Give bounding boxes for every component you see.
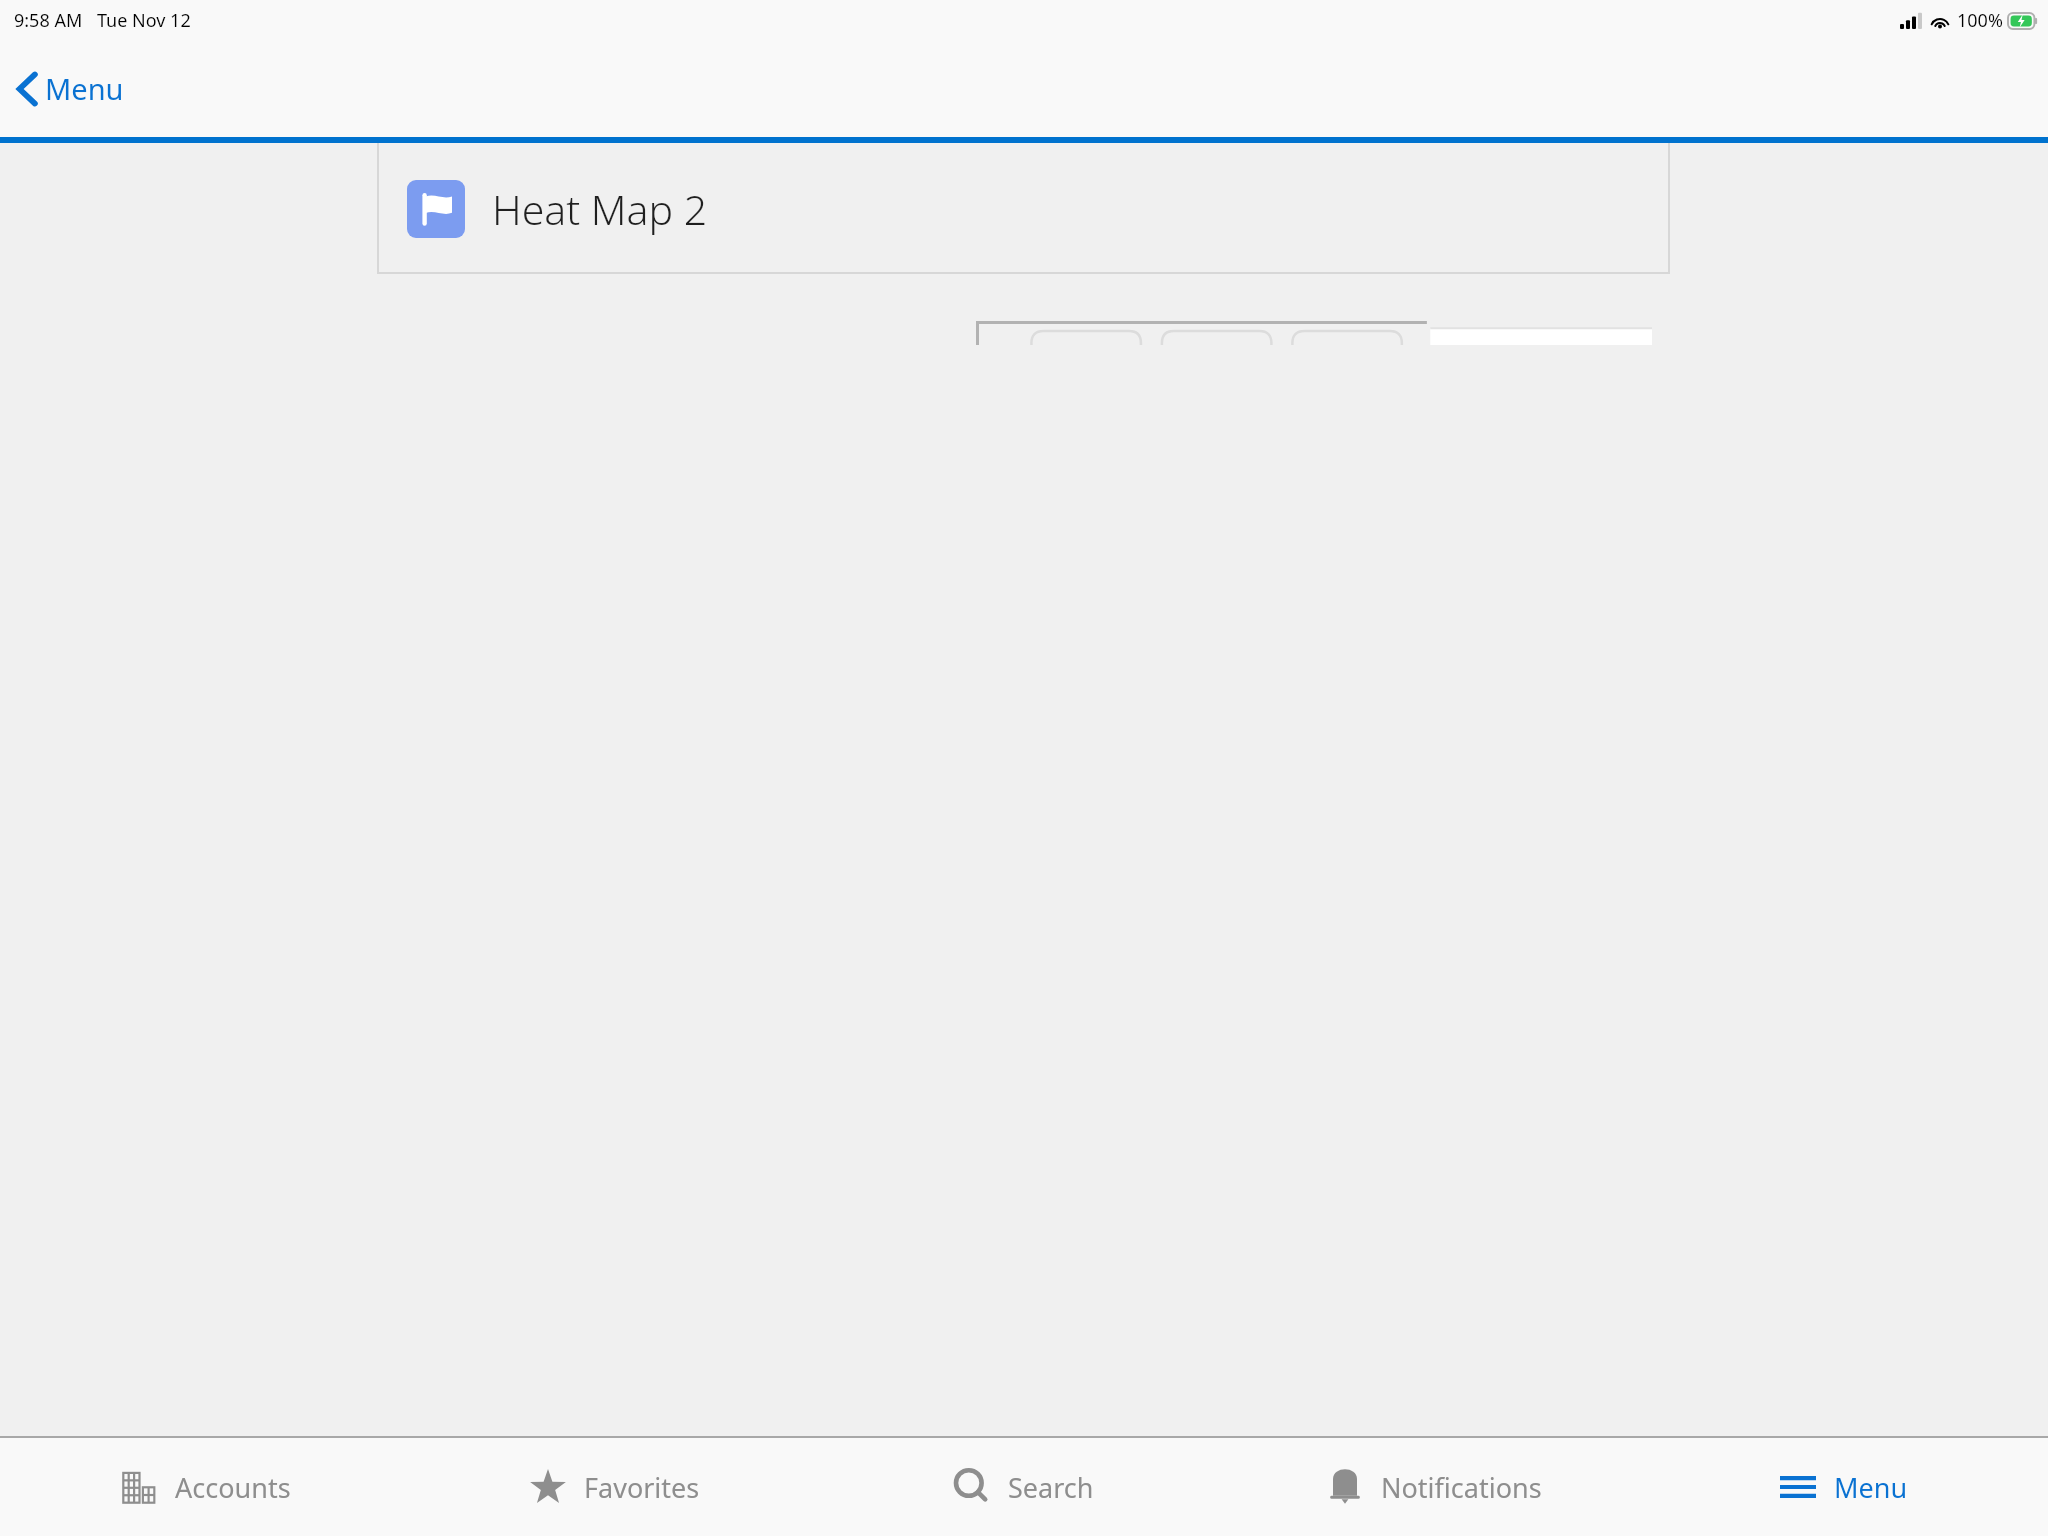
button[interactable]: Heat Map 2	[377, 143, 1670, 274]
staticText: Favorites	[584, 1469, 700, 1506]
staticText: 9:58 AM	[14, 8, 83, 33]
staticText: Menu	[1834, 1469, 1908, 1506]
staticText: 100%	[1957, 8, 2003, 33]
button[interactable]: Search	[818, 1438, 1228, 1536]
staticText: Accounts	[175, 1469, 291, 1506]
button[interactable]: Favorites	[409, 1438, 818, 1536]
staticText: Notifications	[1381, 1469, 1542, 1506]
staticText: Tue Nov 12	[97, 8, 191, 33]
staticText: Menu	[45, 69, 124, 108]
button[interactable]: Menu	[8, 63, 132, 114]
button[interactable]: Accounts	[0, 1438, 409, 1536]
staticText: Heat Map 2	[492, 181, 708, 237]
button[interactable]: Menu	[1638, 1438, 2048, 1536]
button[interactable]: Notifications	[1228, 1438, 1638, 1536]
staticText: Search	[1008, 1469, 1094, 1506]
